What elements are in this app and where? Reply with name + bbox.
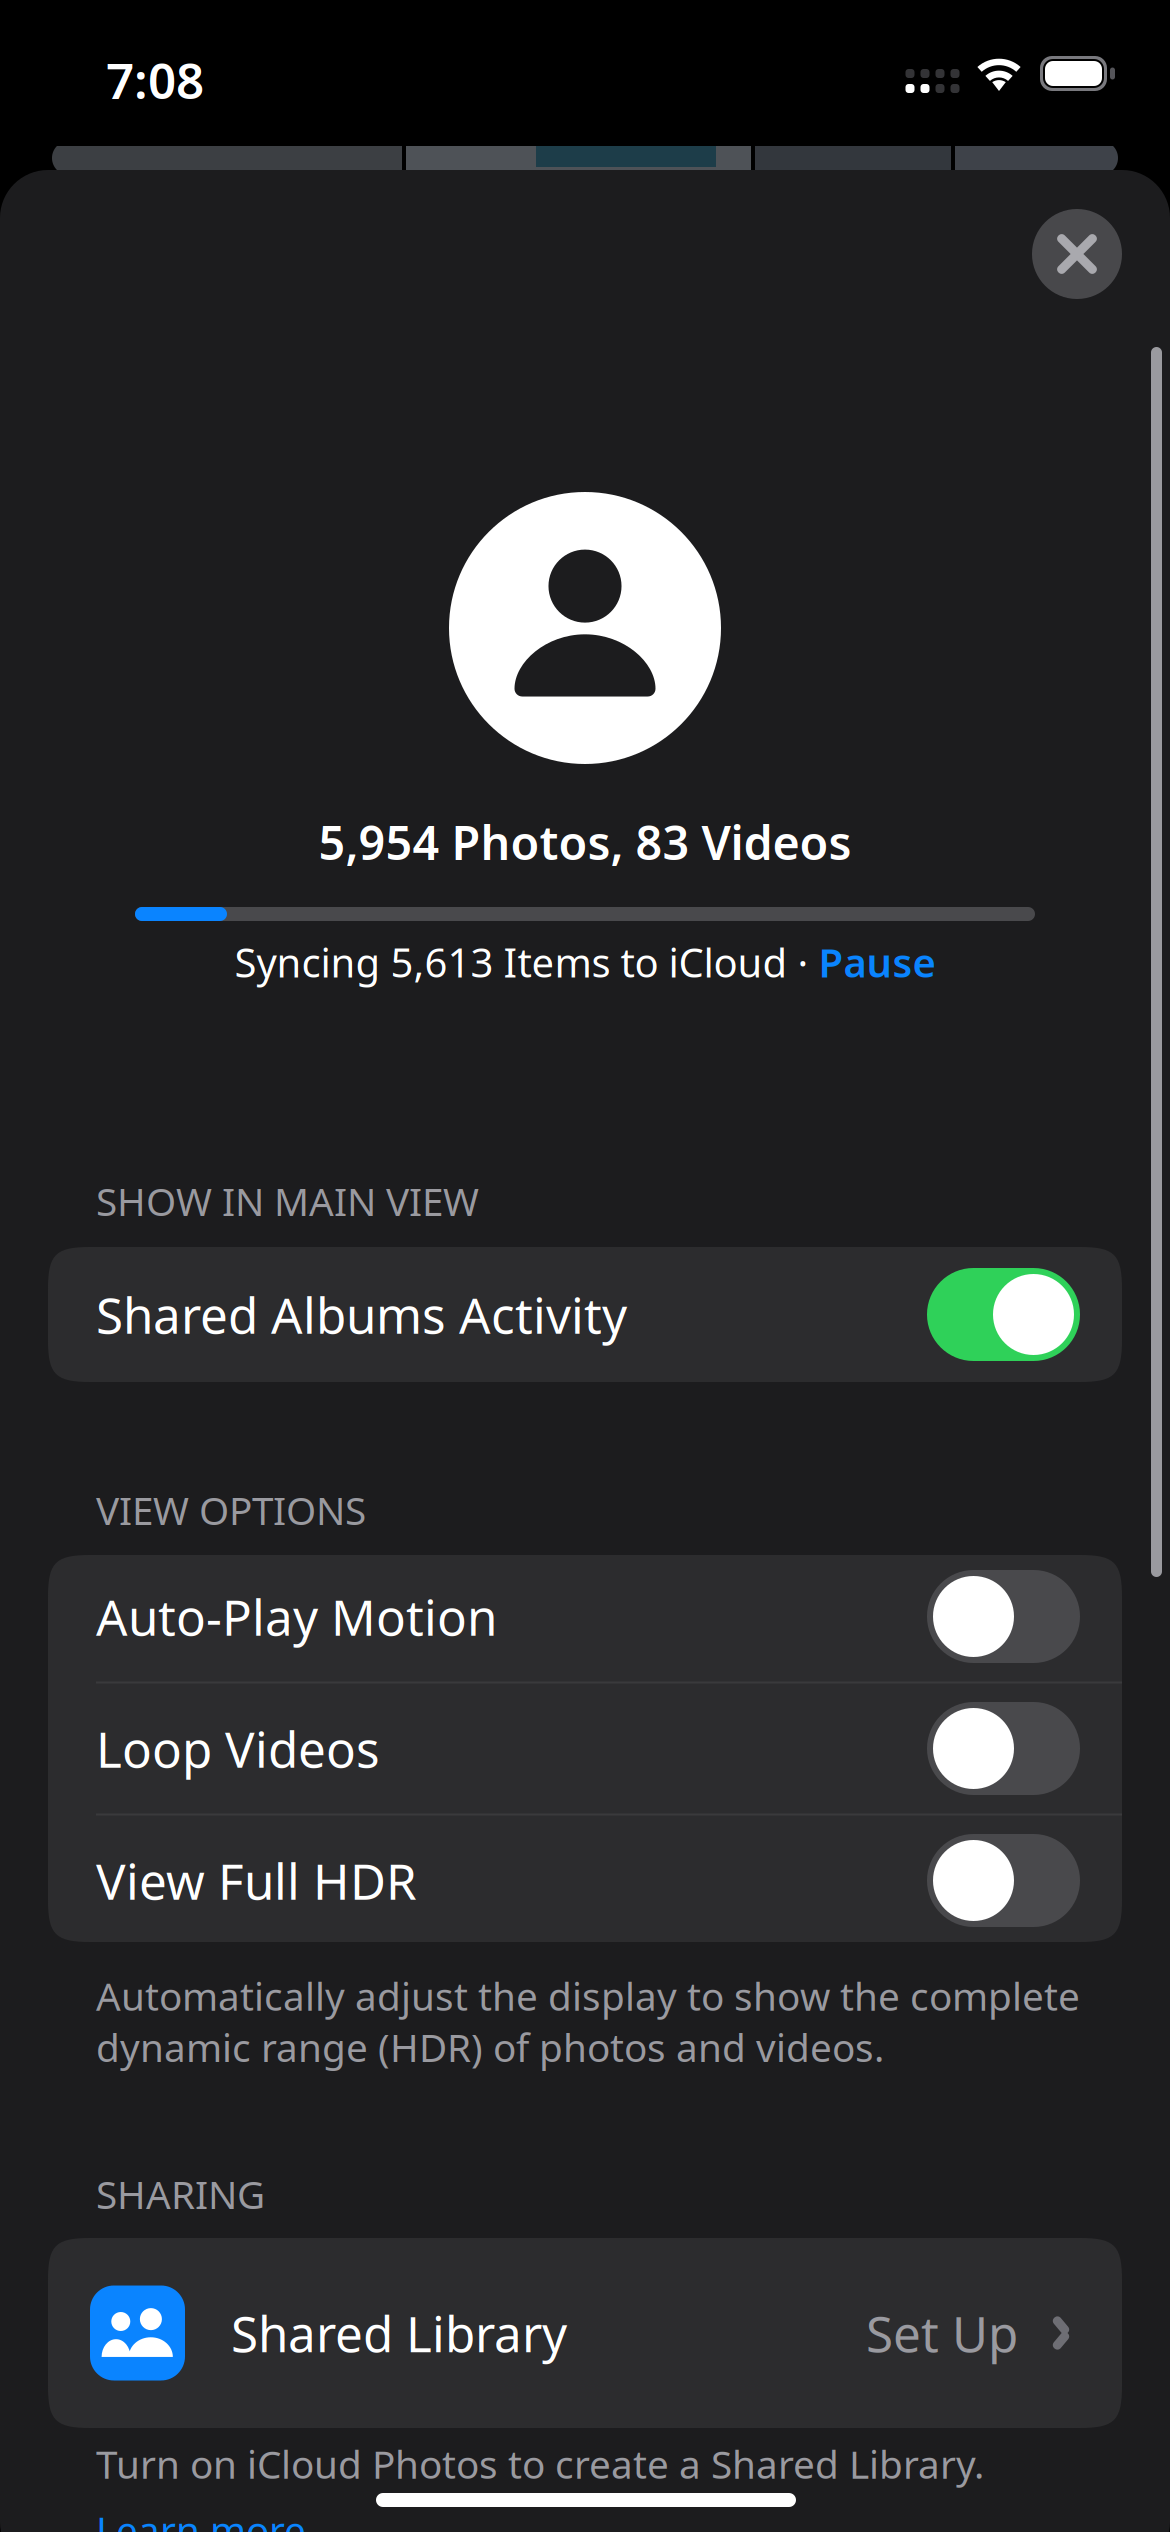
staticText: Set Up [866, 2300, 1018, 2366]
staticText: 7:08 [106, 47, 204, 112]
button[interactable]: Close [1032, 209, 1122, 299]
staticText: Shared Albums Activity [96, 1282, 627, 1347]
staticText: Pause [818, 935, 935, 988]
staticText: Loop Videos [96, 1716, 380, 1781]
staticText: SHARING [96, 2168, 265, 2220]
button[interactable]: Shared Albums Activity [48, 1249, 1122, 1379]
button[interactable]: Shared Library [48, 2238, 1122, 2428]
staticText: 5,954 Photos, 83 Videos [318, 811, 851, 873]
button[interactable]: Learn more [96, 2504, 306, 2532]
staticText: Auto-Play Motion [96, 1584, 497, 1649]
staticText: Automatically adjust the display to show… [96, 1970, 1080, 2073]
staticText: SHOW IN MAIN VIEW [96, 1175, 479, 1227]
staticText: Syncing 5,613 Items to iCloud · [234, 935, 818, 988]
button[interactable]: Loop Videos [48, 1683, 1122, 1813]
staticText: Learn more [96, 2504, 306, 2532]
staticText: Shared Library [231, 2300, 567, 2366]
button[interactable]: Auto-Play Motion [48, 1551, 1122, 1681]
staticText: View Full HDR [96, 1848, 417, 1913]
staticText: Turn on iCloud Photos to create a Shared… [96, 2438, 984, 2489]
button[interactable]: View Full HDR [48, 1815, 1122, 1945]
staticText: VIEW OPTIONS [96, 1484, 366, 1536]
button[interactable]: Pause [818, 935, 935, 988]
